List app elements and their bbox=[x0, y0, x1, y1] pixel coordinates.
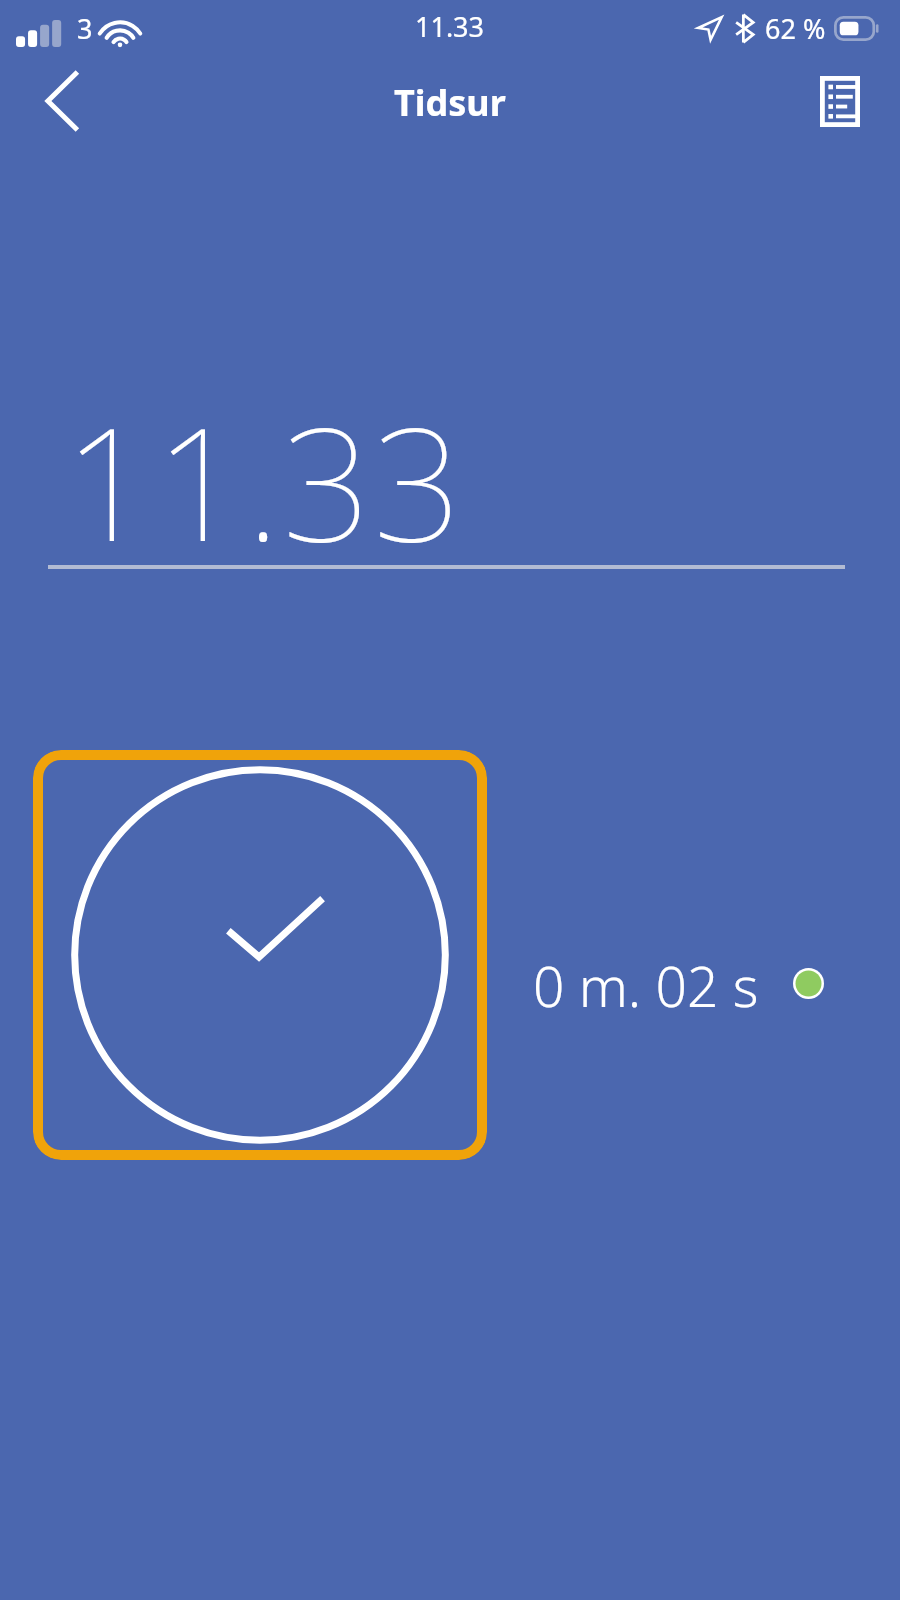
staticText: 3 bbox=[77, 10, 93, 47]
button[interactable]: Lap list bbox=[802, 63, 878, 139]
staticText: 11.33 bbox=[64, 374, 464, 586]
staticText: 62 % bbox=[765, 10, 826, 47]
staticText: 0 m. 02 s bbox=[533, 948, 759, 1023]
button[interactable]: Back bbox=[24, 62, 102, 140]
staticText: 11.33 bbox=[415, 8, 485, 45]
button[interactable]: Stop timer bbox=[33, 750, 487, 1160]
staticText: Tidsur bbox=[394, 78, 506, 127]
